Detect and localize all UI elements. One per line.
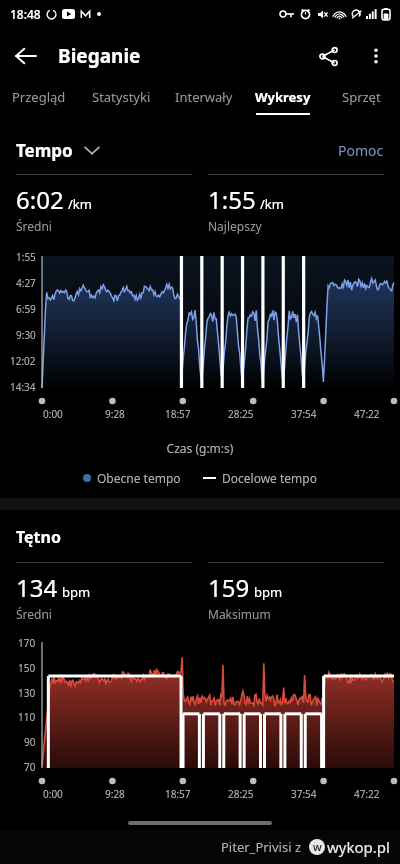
staticText: Najlepszy — [208, 218, 262, 234]
staticText: 28:25 — [228, 787, 254, 801]
button[interactable]: Pomoc — [338, 141, 384, 160]
button[interactable]: Przegląd — [0, 84, 78, 124]
staticText: 18:48 — [10, 6, 41, 22]
staticText: Pomoc — [338, 141, 384, 160]
staticText: 47:22 — [354, 407, 380, 421]
staticText: 6:02 — [16, 183, 64, 216]
staticText: 18:57 — [165, 787, 191, 801]
staticText: Czas (g:m:s) — [0, 440, 400, 456]
staticText: 150 — [18, 661, 36, 675]
staticText: 90 — [24, 735, 36, 749]
staticText: 9:28 — [105, 407, 125, 421]
staticText: 4:27 — [16, 276, 36, 290]
staticText: 28:25 — [228, 407, 254, 421]
staticText: Maksimum — [208, 606, 271, 622]
button[interactable]: Back — [0, 30, 52, 82]
staticText: 47:22 — [354, 787, 380, 801]
staticText: Statystyki — [92, 88, 151, 106]
staticText: 9:30 — [16, 328, 36, 342]
staticText: 70 — [24, 760, 36, 774]
staticText: Tempo — [16, 139, 73, 162]
staticText: 159 — [208, 571, 250, 604]
staticText: 12:02 — [10, 354, 36, 368]
staticText: Piter_Privisi z — [221, 838, 302, 856]
staticText: 37:54 — [291, 407, 317, 421]
staticText: 0:00 — [43, 407, 63, 421]
staticText: 1:55 — [208, 183, 256, 216]
staticText: Docelowe tempo — [222, 470, 317, 486]
staticText: Obecne tempo — [97, 470, 181, 486]
staticText: /km — [260, 195, 284, 213]
staticText: Przegląd — [12, 88, 66, 106]
staticText: Średni — [16, 218, 52, 234]
staticText: /km — [68, 195, 92, 213]
staticText: 1:55 — [16, 250, 36, 264]
staticText: 110 — [18, 710, 36, 724]
staticText: W — [313, 841, 322, 853]
staticText: Interwały — [175, 88, 233, 106]
button[interactable]: Wykresy — [244, 84, 322, 124]
staticText: Tętno — [16, 526, 61, 548]
staticText: 18:57 — [165, 407, 191, 421]
staticText: Średni — [16, 606, 52, 622]
button[interactable]: Sprzęt — [322, 84, 400, 124]
staticText: 170 — [18, 636, 36, 650]
button[interactable]: Statystyki — [78, 84, 164, 124]
staticText: 9:28 — [105, 787, 125, 801]
staticText: bpm — [254, 583, 283, 601]
staticText: 6:59 — [16, 302, 36, 316]
staticText: 37:54 — [291, 787, 317, 801]
staticText: 0:00 — [43, 787, 63, 801]
staticText: Wykresy — [255, 88, 311, 106]
button[interactable]: Interwały — [164, 84, 244, 124]
staticText: 134 — [16, 571, 58, 604]
staticText: 130 — [18, 686, 36, 700]
staticText: Sprzęt — [342, 88, 381, 106]
staticText: bpm — [62, 583, 91, 601]
button[interactable]: Share — [304, 32, 352, 80]
staticText: wykop.pl — [327, 837, 390, 857]
staticText: Bieganie — [58, 43, 141, 69]
button[interactable]: More options — [352, 32, 400, 80]
button[interactable]: Tempo — [16, 139, 99, 162]
staticText: 14:34 — [10, 380, 36, 394]
